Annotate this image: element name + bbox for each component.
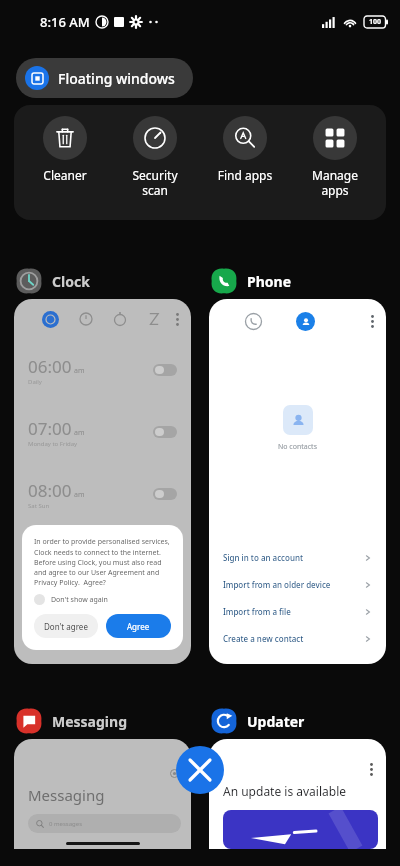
staticText: Import from an older device — [223, 579, 331, 590]
staticText: Create a new contact — [223, 633, 304, 644]
staticText: Updater — [247, 712, 305, 731]
button[interactable]: 06:00 — [14, 299, 191, 664]
button[interactable]: Manage apps — [296, 116, 374, 199]
staticText: am — [74, 366, 85, 376]
button[interactable]: Close all — [176, 746, 224, 794]
staticText: Floating windows — [58, 69, 175, 88]
staticText: 06:00 — [28, 355, 72, 378]
button[interactable]: Clock — [14, 263, 90, 299]
staticText: 0 messages — [49, 820, 83, 828]
staticText: Don't agree — [44, 621, 88, 632]
staticText: Phone — [247, 272, 292, 291]
staticText: 08:00 — [28, 479, 72, 502]
button[interactable]: Cleaner — [26, 116, 104, 183]
staticText: Agree — [127, 621, 150, 632]
button[interactable]: Agree — [106, 614, 171, 638]
button[interactable]: Updater — [209, 703, 305, 739]
staticText: An update is available — [223, 783, 347, 799]
button[interactable]: An update is available — [209, 739, 386, 849]
staticText: Messaging — [52, 712, 127, 731]
button[interactable]: Security scan — [116, 116, 194, 199]
staticText: 07:00 — [28, 417, 72, 440]
button[interactable]: Phone — [209, 263, 292, 299]
button[interactable]: Import from an older device — [209, 571, 386, 598]
staticText: Messaging — [28, 785, 105, 805]
staticText: Monday to Friday — [28, 440, 78, 448]
button[interactable]: Import from a file — [209, 598, 386, 625]
staticText: am — [74, 490, 85, 500]
button[interactable]: Sign in to an account — [209, 544, 386, 571]
button[interactable]: Don't agree — [34, 614, 98, 638]
staticText: Find apps — [206, 167, 284, 183]
staticText: Security scan — [116, 167, 194, 199]
staticText: am — [74, 428, 85, 438]
button[interactable]: No contacts — [209, 299, 386, 664]
staticText: Sign in to an account — [223, 552, 303, 563]
button[interactable]: Don't show again — [34, 594, 108, 605]
staticText: 100 — [369, 17, 382, 27]
button[interactable]: Messaging — [14, 703, 127, 739]
staticText: Manage apps — [296, 167, 374, 199]
staticText: Don't show again — [51, 595, 108, 605]
staticText: Clock — [52, 272, 90, 291]
button[interactable]: Messaging — [14, 739, 191, 849]
staticText: Daily — [28, 378, 42, 386]
staticText: No contacts — [278, 442, 317, 452]
button[interactable]: Create a new contact — [209, 625, 386, 652]
button[interactable]: Floating windows — [16, 58, 193, 98]
staticText: Cleaner — [26, 167, 104, 183]
staticText: Sat Sun — [28, 502, 50, 510]
staticText: 8:16 AM — [40, 13, 90, 31]
staticText: In order to provide personalised service… — [34, 537, 171, 587]
staticText: Import from a file — [223, 606, 291, 617]
button[interactable]: Find apps — [206, 116, 284, 183]
